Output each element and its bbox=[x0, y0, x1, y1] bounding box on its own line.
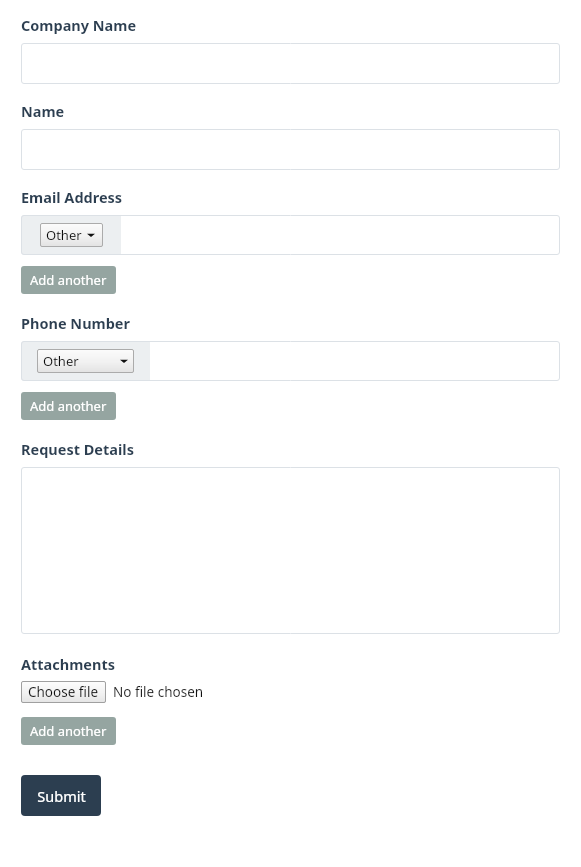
button[interactable]: Submit bbox=[21, 775, 101, 816]
staticText: Choose file bbox=[28, 683, 99, 701]
staticText: Other bbox=[43, 352, 79, 370]
button[interactable]: Add another bbox=[21, 392, 116, 420]
staticText: Request Details bbox=[21, 439, 134, 459]
button[interactable]: Other bbox=[40, 223, 103, 247]
staticText: Email Address bbox=[21, 187, 123, 207]
staticText: Company Name bbox=[21, 15, 137, 35]
staticText: Phone Number bbox=[21, 313, 130, 333]
staticText: Name bbox=[21, 101, 65, 121]
staticText: Add another bbox=[30, 397, 107, 415]
staticText: Submit bbox=[37, 786, 86, 806]
button[interactable] bbox=[21, 43, 560, 84]
staticText: No file chosen bbox=[113, 683, 204, 701]
button[interactable] bbox=[150, 341, 560, 381]
button[interactable] bbox=[121, 215, 560, 255]
staticText: Add another bbox=[30, 271, 107, 289]
button[interactable]: Add another bbox=[21, 717, 116, 745]
staticText: Other bbox=[46, 226, 82, 244]
staticText: Add another bbox=[30, 722, 107, 740]
button[interactable]: Other bbox=[37, 349, 134, 373]
staticText: Attachments bbox=[21, 654, 116, 674]
button[interactable]: Add another bbox=[21, 266, 116, 294]
button[interactable] bbox=[21, 129, 560, 170]
button[interactable] bbox=[21, 467, 560, 634]
button[interactable]: Choose file bbox=[21, 681, 106, 703]
